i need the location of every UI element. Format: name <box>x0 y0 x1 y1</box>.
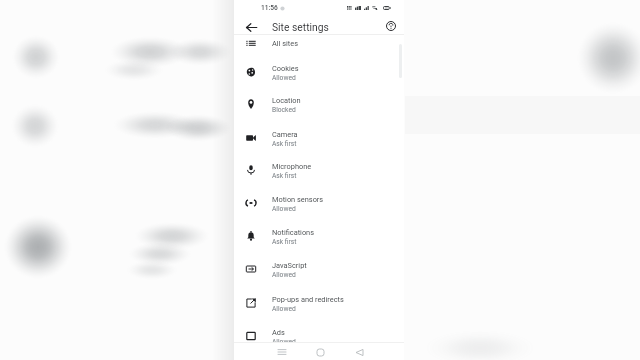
staticText: Motion sensors <box>272 195 324 204</box>
staticText: Allowed <box>272 305 296 313</box>
staticText: Ads <box>272 328 285 337</box>
staticText: Allowed <box>272 271 296 279</box>
button[interactable]: JavaScript <box>234 253 404 285</box>
button[interactable]: Home <box>312 344 328 360</box>
staticText: Site settings <box>272 21 329 33</box>
staticText: Blocked <box>272 106 296 114</box>
button[interactable]: Camera <box>234 122 404 154</box>
staticText: Camera <box>272 130 298 139</box>
staticText: Ask first <box>272 238 297 246</box>
staticText: Location <box>272 96 301 105</box>
staticText: Allowed <box>272 74 296 82</box>
button[interactable]: Help <box>381 16 401 36</box>
staticText: Cookies <box>272 64 299 73</box>
button[interactable]: All sites <box>234 27 404 59</box>
staticText: All sites <box>272 39 299 48</box>
button[interactable]: Cookies <box>234 56 404 88</box>
button[interactable]: Notifications <box>234 220 404 252</box>
staticText: JavaScript <box>272 261 307 270</box>
staticText: Ask first <box>272 172 297 180</box>
staticText: Pop-ups and redirects <box>272 295 344 304</box>
button[interactable]: Motion sensors <box>234 187 404 219</box>
staticText: Microphone <box>272 162 312 171</box>
staticText: 11:56 <box>261 4 278 12</box>
button[interactable]: Back <box>351 344 367 360</box>
button[interactable]: Back <box>241 17 261 37</box>
button[interactable]: Recents <box>274 344 290 360</box>
button[interactable]: Microphone <box>234 154 404 186</box>
button[interactable]: Ads <box>234 320 404 352</box>
staticText: Allowed <box>272 338 296 346</box>
button[interactable]: Location <box>234 88 404 120</box>
button[interactable]: Pop-ups and redirects <box>234 287 404 319</box>
staticText: Notifications <box>272 228 315 237</box>
staticText: Ask first <box>272 140 297 148</box>
staticText: Allowed <box>272 205 296 213</box>
